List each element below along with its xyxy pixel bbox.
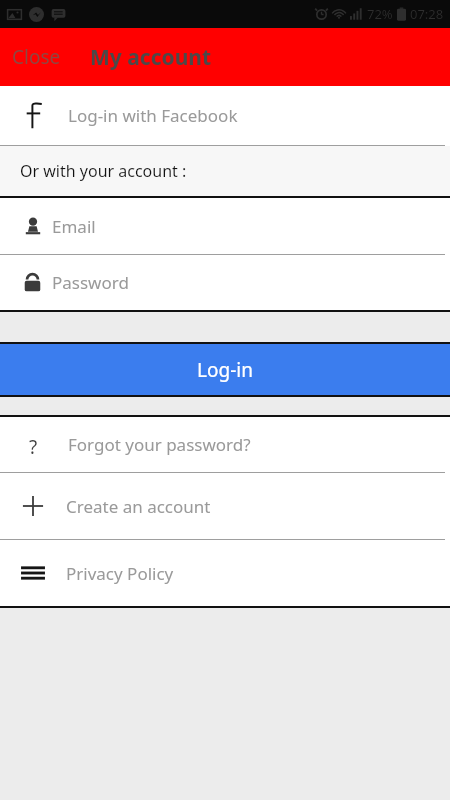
button[interactable]: Create an account [0, 473, 450, 539]
staticText: 72% [367, 5, 393, 23]
button[interactable]: Password [0, 255, 450, 310]
button[interactable]: Log-in [0, 344, 450, 395]
button[interactable]: Log-in with Facebook [0, 86, 450, 145]
staticText: Privacy Policy [66, 562, 174, 585]
staticText: Forgot your password? [68, 433, 251, 456]
staticText: Close [12, 44, 61, 70]
button[interactable]: ? [0, 417, 450, 472]
staticText: Email [52, 215, 96, 238]
staticText: Or with your account : [20, 160, 187, 182]
staticText: Log-in [197, 357, 253, 383]
staticText: My account [90, 43, 212, 72]
button[interactable]: Privacy Policy [0, 540, 450, 606]
staticText: Password [52, 271, 129, 294]
button[interactable]: Email [0, 198, 450, 254]
button[interactable]: Close [0, 34, 73, 80]
staticText: Log-in with Facebook [68, 104, 238, 127]
staticText: Create an account [66, 495, 211, 518]
staticText: 07:28 [410, 5, 444, 23]
staticText: ? [29, 434, 38, 456]
